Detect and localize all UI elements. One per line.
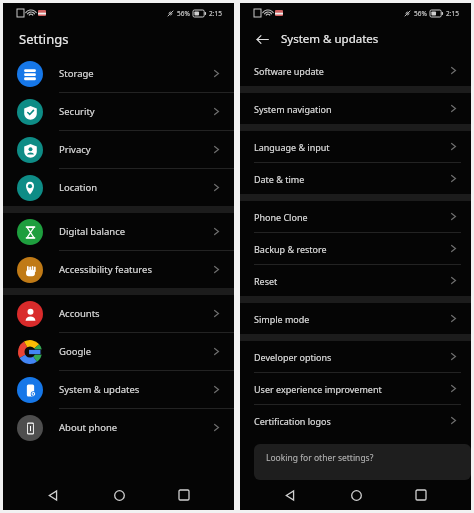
staticText: Storage	[59, 67, 211, 80]
staticText: Language & input	[254, 141, 448, 153]
button[interactable]: Digital balance	[3, 213, 234, 250]
staticText: Phone Clone	[254, 211, 448, 223]
button[interactable]: Software update	[240, 55, 471, 86]
button[interactable]: About phone	[3, 409, 234, 446]
staticText: 56%	[177, 9, 190, 18]
staticText: 56%	[414, 9, 427, 18]
staticText: Settings	[19, 30, 69, 48]
staticText: Certification logos	[254, 415, 448, 427]
staticText: Simple mode	[254, 313, 448, 325]
button[interactable]: Accessibility features	[3, 251, 234, 288]
button[interactable]: User experience improvement	[240, 373, 471, 404]
button[interactable]: Reset	[240, 265, 471, 296]
staticText: System navigation	[254, 103, 448, 115]
button[interactable]: Phone Clone	[240, 201, 471, 232]
button[interactable]: Accounts	[3, 295, 234, 332]
staticText: System & updates	[59, 383, 211, 396]
staticText: System & updates	[281, 31, 379, 47]
button[interactable]: Simple mode	[240, 303, 471, 334]
staticText: Date & time	[254, 173, 448, 185]
button[interactable]: Security	[3, 93, 234, 130]
button[interactable]: Back	[275, 480, 305, 510]
staticText: Privacy	[59, 143, 211, 156]
staticText: Looking for other settings?	[266, 452, 374, 464]
button[interactable]: Language & input	[240, 131, 471, 162]
button[interactable]: System & updates	[3, 371, 234, 408]
button[interactable]: Storage	[3, 55, 234, 92]
button[interactable]: Date & time	[240, 163, 471, 194]
button[interactable]: System navigation	[240, 93, 471, 124]
staticText: Accessibility features	[59, 263, 211, 276]
staticText: Location	[59, 181, 211, 194]
staticText: Accounts	[59, 307, 211, 320]
button[interactable]: Home	[104, 480, 134, 510]
staticText: Google	[59, 345, 211, 358]
staticText: About phone	[59, 421, 211, 434]
button[interactable]: Developer options	[240, 341, 471, 372]
button[interactable]: Back	[38, 480, 68, 510]
staticText: Software update	[254, 65, 448, 77]
button[interactable]: Google	[3, 333, 234, 370]
button[interactable]: Recents	[169, 480, 199, 510]
staticText: 2:15	[209, 9, 222, 18]
staticText: Developer options	[254, 351, 448, 363]
staticText: Digital balance	[59, 225, 211, 238]
staticText: 2:15	[446, 9, 459, 18]
staticText: User experience improvement	[254, 383, 448, 395]
button[interactable]: Back	[252, 29, 272, 49]
button[interactable]: Location	[3, 169, 234, 206]
button[interactable]: Privacy	[3, 131, 234, 168]
staticText: Security	[59, 105, 211, 118]
staticText: Reset	[254, 275, 448, 287]
staticText: Backup & restore	[254, 243, 448, 255]
button[interactable]: Backup & restore	[240, 233, 471, 264]
button[interactable]: Home	[341, 480, 371, 510]
button[interactable]: Recents	[406, 480, 436, 510]
button[interactable]: Certification logos	[240, 405, 471, 436]
